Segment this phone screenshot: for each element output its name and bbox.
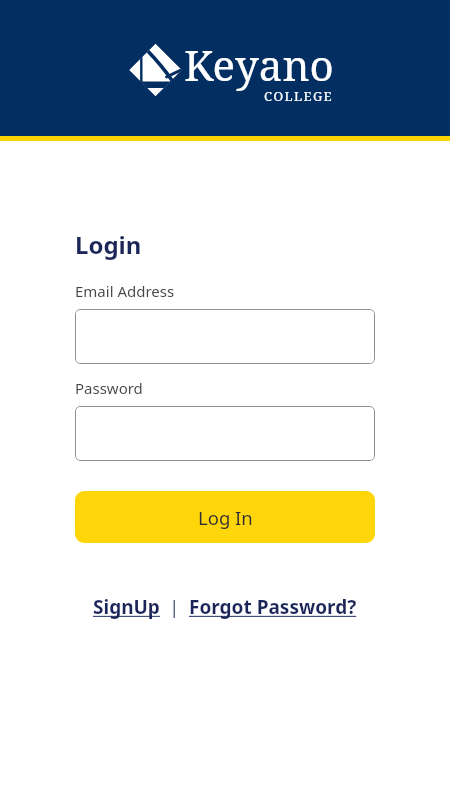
staticText: Login: [75, 228, 142, 261]
button[interactable]: Forgot Password?: [189, 594, 357, 620]
button[interactable]: [75, 309, 375, 364]
staticText: COLLEGE: [264, 87, 334, 105]
staticText: Password: [75, 378, 143, 398]
staticText: Email Address: [75, 281, 175, 301]
button[interactable]: SignUp: [93, 594, 160, 620]
button[interactable]: [75, 406, 375, 461]
staticText: Log In: [198, 505, 253, 530]
staticText: |: [160, 595, 189, 620]
staticText: Keyano: [184, 36, 334, 93]
button[interactable]: Log In: [75, 491, 375, 543]
